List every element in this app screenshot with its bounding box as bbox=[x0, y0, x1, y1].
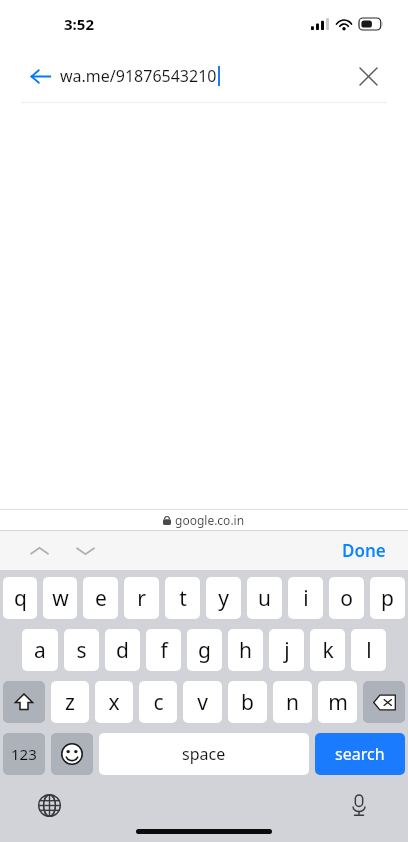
button[interactable]: m bbox=[318, 681, 357, 723]
staticText: f bbox=[160, 636, 168, 665]
staticText: wa.me/91876543210 bbox=[60, 65, 217, 87]
button[interactable]: Emoji bbox=[51, 733, 93, 775]
staticText: t bbox=[179, 584, 187, 613]
button[interactable]: z bbox=[51, 681, 89, 723]
button[interactable]: t bbox=[165, 577, 200, 619]
staticText: google.co.in bbox=[175, 512, 245, 528]
staticText: w bbox=[52, 584, 69, 613]
staticText: b bbox=[241, 688, 254, 717]
staticText: search bbox=[335, 743, 385, 765]
staticText: z bbox=[65, 688, 75, 717]
staticText: p bbox=[381, 584, 394, 613]
staticText: i bbox=[303, 584, 309, 613]
staticText: n bbox=[286, 688, 299, 717]
staticText: q bbox=[14, 584, 27, 613]
button[interactable]: x bbox=[95, 681, 133, 723]
staticText: y bbox=[218, 584, 229, 613]
button[interactable]: j bbox=[269, 629, 304, 671]
button[interactable]: u bbox=[247, 577, 282, 619]
button[interactable]: d bbox=[105, 629, 140, 671]
button[interactable]: Clear text bbox=[350, 58, 386, 94]
staticText: 3:52 bbox=[64, 14, 94, 34]
button[interactable]: Previous field bbox=[22, 534, 56, 568]
staticText: v bbox=[197, 688, 208, 717]
button[interactable]: k bbox=[310, 629, 345, 671]
staticText: m bbox=[328, 688, 348, 717]
button[interactable]: Done bbox=[336, 535, 392, 566]
button[interactable]: o bbox=[329, 577, 364, 619]
button[interactable]: b bbox=[228, 681, 267, 723]
button[interactable]: c bbox=[139, 681, 177, 723]
button[interactable]: l bbox=[351, 629, 386, 671]
staticText: l bbox=[366, 636, 372, 665]
button[interactable]: i bbox=[288, 577, 323, 619]
button[interactable]: y bbox=[206, 577, 241, 619]
button[interactable]: w bbox=[43, 577, 77, 619]
staticText: r bbox=[137, 584, 146, 613]
button[interactable]: g bbox=[187, 629, 222, 671]
button[interactable]: q bbox=[3, 577, 37, 619]
button[interactable]: Next field bbox=[68, 534, 102, 568]
button[interactable]: Backspace bbox=[363, 681, 405, 723]
staticText: a bbox=[34, 636, 46, 665]
button[interactable]: v bbox=[183, 681, 222, 723]
button[interactable]: f bbox=[146, 629, 181, 671]
staticText: space bbox=[182, 743, 226, 765]
button[interactable]: a bbox=[22, 629, 58, 671]
button[interactable]: r bbox=[124, 577, 159, 619]
button[interactable]: Shift bbox=[3, 681, 45, 723]
button[interactable]: h bbox=[228, 629, 263, 671]
staticText: j bbox=[284, 636, 290, 665]
button[interactable]: p bbox=[370, 577, 405, 619]
button[interactable]: Numbers bbox=[3, 733, 45, 775]
staticText: g bbox=[198, 636, 211, 665]
button[interactable]: Change keyboard language bbox=[34, 790, 64, 820]
staticText: h bbox=[239, 636, 252, 665]
staticText: e bbox=[95, 584, 107, 613]
button[interactable]: s bbox=[64, 629, 99, 671]
staticText: x bbox=[108, 688, 120, 717]
button[interactable]: n bbox=[273, 681, 312, 723]
staticText: o bbox=[340, 584, 353, 613]
staticText: Done bbox=[342, 539, 386, 562]
button[interactable]: Back bbox=[22, 58, 58, 94]
staticText: c bbox=[153, 688, 164, 717]
staticText: s bbox=[76, 636, 87, 665]
staticText: d bbox=[116, 636, 129, 665]
staticText: k bbox=[322, 636, 334, 665]
staticText: 123 bbox=[11, 744, 37, 764]
button[interactable]: space bbox=[99, 733, 309, 775]
button[interactable]: e bbox=[83, 577, 118, 619]
button[interactable]: Dictation bbox=[344, 790, 374, 820]
staticText: u bbox=[258, 584, 271, 613]
button[interactable]: search bbox=[315, 733, 405, 775]
